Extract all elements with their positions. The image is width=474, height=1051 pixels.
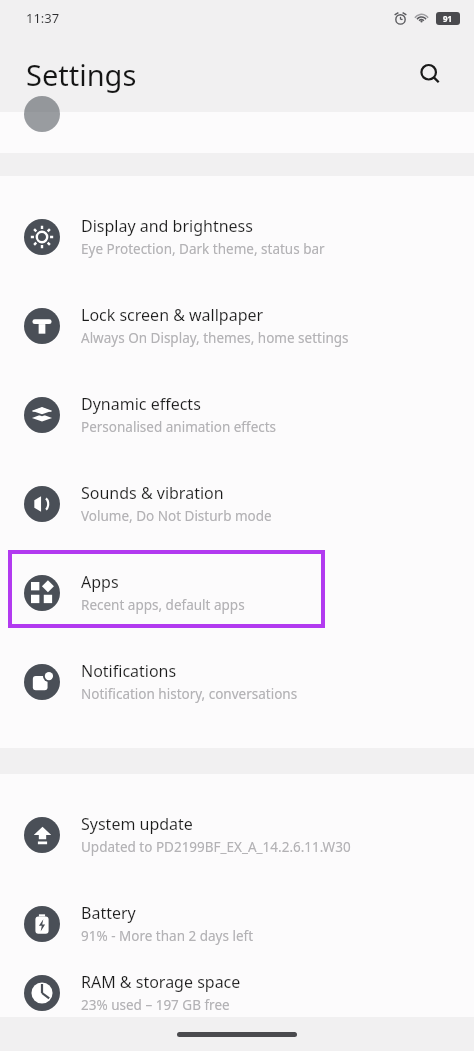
- staticText: Notification history, conversations: [81, 685, 298, 703]
- staticText: Dynamic effects: [81, 393, 201, 415]
- staticText: 91% - More than 2 days left: [81, 927, 254, 945]
- staticText: Sounds & vibration: [81, 482, 224, 504]
- button[interactable]: Lock screen & wallpaper: [0, 281, 474, 370]
- staticText: Always On Display, themes, home settings: [81, 329, 349, 347]
- staticText: Updated to PD2199BF_EX_A_14.2.6.11.W30: [81, 838, 351, 856]
- staticText: Volume, Do Not Disturb mode: [81, 507, 272, 525]
- button[interactable]: Display and brightness: [0, 192, 474, 281]
- staticText: Recent apps, default apps: [81, 596, 245, 614]
- staticText: Battery: [81, 902, 136, 924]
- staticText: Personalised animation effects: [81, 418, 277, 436]
- button[interactable]: Sounds & vibration: [0, 459, 474, 548]
- staticText: 23% used – 197 GB free: [81, 996, 230, 1014]
- staticText: Apps: [81, 571, 119, 593]
- staticText: Eye Protection, Dark theme, status bar: [81, 240, 325, 258]
- button[interactable]: Dynamic effects: [0, 370, 474, 459]
- button[interactable]: Apps: [0, 548, 474, 637]
- button[interactable]: Battery: [0, 879, 474, 968]
- staticText: System update: [81, 813, 193, 835]
- staticText: Lock screen & wallpaper: [81, 304, 264, 326]
- staticText: RAM & storage space: [81, 971, 241, 993]
- staticText: 91: [443, 13, 453, 24]
- button[interactable]: Notifications: [0, 637, 474, 726]
- staticText: Notifications: [81, 660, 177, 682]
- staticText: Settings: [26, 55, 137, 94]
- button[interactable]: System update: [0, 790, 474, 879]
- button[interactable]: RAM & storage space: [0, 968, 474, 1017]
- staticText: Display and brightness: [81, 215, 253, 237]
- button[interactable]: Search: [410, 54, 450, 94]
- staticText: 11:37: [26, 9, 60, 27]
